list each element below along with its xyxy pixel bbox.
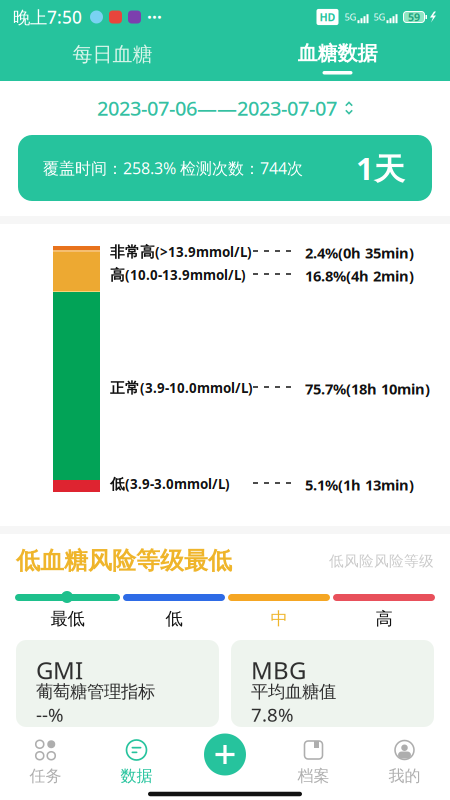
button[interactable]: Add record: [200, 729, 250, 779]
button[interactable]: 每日血糖: [0, 34, 225, 81]
staticText: 数据: [120, 766, 152, 786]
staticText: 葡萄糖管理指标: [36, 681, 155, 702]
staticText: 59: [408, 10, 420, 24]
staticText: 档案: [297, 766, 329, 786]
staticText: --%: [36, 702, 64, 727]
staticText: HD: [319, 10, 335, 24]
staticText: 非常高: [110, 243, 155, 261]
staticText: 晚上7:50: [13, 5, 82, 28]
staticText: 任务: [29, 766, 61, 786]
staticText: 低风险风险等级: [329, 552, 434, 570]
staticText: 高: [110, 266, 125, 284]
staticText: (10.0-13.9mmol/L): [125, 266, 246, 284]
staticText: 每日血糖: [72, 42, 152, 67]
staticText: (3.9-10.0mmol/L): [140, 379, 253, 397]
staticText: 5G: [373, 11, 385, 23]
button[interactable]: 数据: [91, 733, 182, 788]
staticText: 高: [375, 608, 392, 629]
staticText: 5.1%(1h 13min): [305, 475, 414, 494]
staticText: 低血糖风险等级最低: [16, 546, 232, 575]
staticText: 2.4%(0h 35min): [305, 243, 414, 262]
staticText: GMI: [36, 654, 83, 686]
staticText: (>13.9mmol/L): [155, 243, 252, 261]
button[interactable]: 2023-07-06——2023-07-07: [0, 81, 450, 135]
staticText: 中: [270, 608, 287, 629]
staticText: 平均血糖值: [251, 681, 336, 702]
staticText: ···: [147, 5, 162, 28]
button[interactable]: 血糖数据: [225, 34, 450, 81]
staticText: 最低: [50, 608, 84, 629]
staticText: 1天: [356, 148, 405, 188]
staticText: 16.8%(4h 2min): [305, 266, 414, 285]
staticText: 血糖数据: [297, 41, 377, 66]
button[interactable]: 任务: [0, 733, 91, 788]
staticText: 我的: [388, 766, 420, 786]
staticText: 低: [110, 475, 125, 493]
staticText: (3.9-3.0mmol/L): [125, 475, 230, 493]
staticText: 低: [165, 608, 182, 629]
staticText: 正常: [110, 379, 140, 397]
staticText: MBG: [251, 654, 306, 686]
staticText: 覆盖时间：258.3% 检测次数：744次: [43, 157, 303, 179]
staticText: 7.8%: [251, 702, 294, 727]
staticText: 75.7%(18h 10min): [305, 379, 430, 398]
staticText: 2023-07-06——2023-07-07: [97, 95, 337, 121]
button[interactable]: 我的: [359, 733, 450, 788]
button[interactable]: 档案: [268, 733, 359, 788]
staticText: 5G: [344, 11, 356, 23]
